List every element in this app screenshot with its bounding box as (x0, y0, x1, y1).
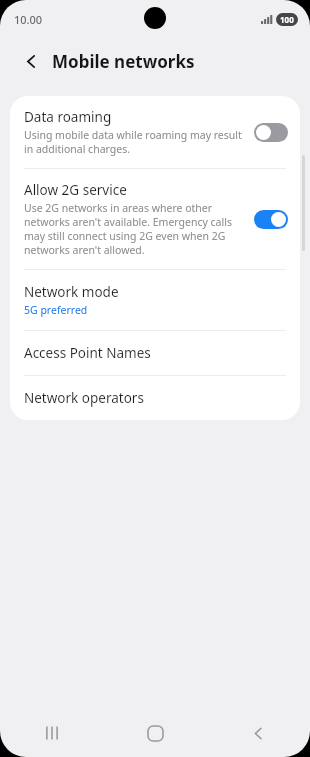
staticText: 5G preferred (24, 303, 88, 317)
button[interactable]: Home (104, 709, 207, 757)
button[interactable]: On (254, 210, 288, 229)
button[interactable]: Access Point Names (10, 331, 300, 375)
staticText: Mobile networks (52, 50, 195, 73)
button[interactable]: Allow 2G service (10, 169, 300, 269)
button[interactable]: Back (207, 709, 310, 757)
staticText: Using mobile data while roaming may resu… (24, 128, 244, 156)
staticText: Network mode (24, 283, 119, 301)
staticText: Access Point Names (24, 344, 151, 362)
button[interactable]: Data roaming (10, 96, 300, 168)
staticText: Data roaming (24, 108, 112, 126)
staticText: 10.00 (14, 12, 43, 27)
button[interactable]: Network mode (10, 270, 300, 330)
staticText: Use 2G networks in areas where other net… (24, 201, 244, 257)
button[interactable]: Back (14, 44, 48, 78)
button[interactable]: Recent apps (0, 709, 104, 757)
staticText: Allow 2G service (24, 181, 127, 199)
button[interactable]: Off (254, 123, 288, 142)
staticText: Network operators (24, 389, 144, 407)
button[interactable]: Network operators (10, 376, 300, 420)
staticText: 100 (280, 14, 294, 25)
